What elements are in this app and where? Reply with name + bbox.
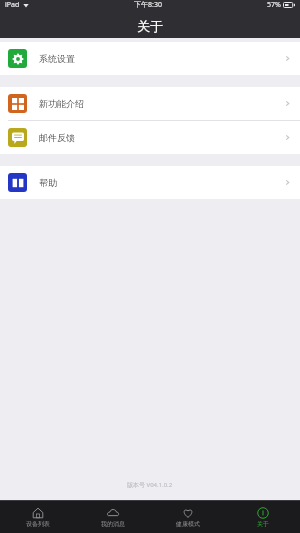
button[interactable]: 关于 — [225, 504, 300, 531]
button[interactable]: 设备列表 — [0, 504, 75, 531]
button[interactable]: 邮件反馈 — [0, 121, 300, 154]
staticText: 下午8:30 — [134, 0, 162, 10]
staticText: 新功能介绍 — [39, 98, 84, 109]
staticText: 57% — [267, 0, 281, 10]
staticText: 邮件反馈 — [39, 132, 75, 143]
button[interactable]: 帮助 — [0, 166, 300, 199]
button[interactable]: 新功能介绍 — [0, 87, 300, 120]
staticText: 系统设置 — [39, 53, 75, 64]
button[interactable]: 健康模式 — [150, 504, 225, 531]
staticText: 关于 — [137, 18, 163, 34]
staticText: 版本号 V04.1.0.2 — [127, 481, 173, 489]
staticText: 我的消息 — [101, 520, 125, 528]
staticText: 设备列表 — [26, 520, 50, 528]
button[interactable]: 我的消息 — [75, 504, 150, 531]
staticText: iPad — [5, 0, 20, 10]
staticText: 关于 — [257, 520, 269, 528]
staticText: 帮助 — [39, 177, 57, 188]
staticText: 健康模式 — [176, 520, 200, 528]
button[interactable]: 系统设置 — [0, 42, 300, 75]
